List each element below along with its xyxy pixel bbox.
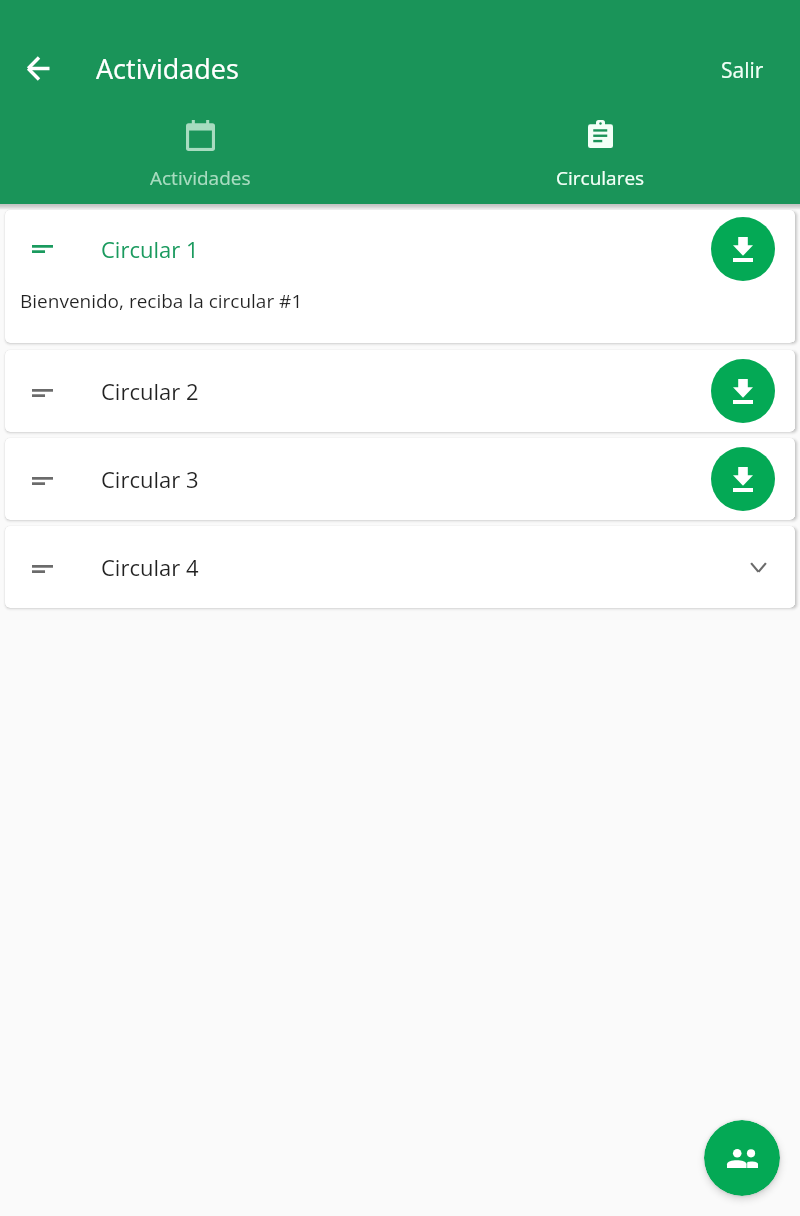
staticText: Bienvenido, reciba la circular #1 xyxy=(20,288,303,314)
button[interactable]: Contactos xyxy=(704,1120,780,1196)
staticText: Circular 3 xyxy=(101,464,711,494)
button[interactable]: Descargar xyxy=(711,217,775,281)
button[interactable]: Circular 4 xyxy=(5,526,795,608)
staticText: Circular 2 xyxy=(101,376,711,406)
button[interactable]: Circular 3 xyxy=(5,438,795,520)
button[interactable]: Actividades xyxy=(0,112,400,204)
button[interactable]: Descargar xyxy=(711,359,775,423)
button[interactable]: Expandir xyxy=(736,545,780,589)
button[interactable]: Circular 2 xyxy=(5,350,795,432)
button[interactable]: Descargar xyxy=(711,447,775,511)
staticText: Circulares xyxy=(556,165,645,191)
staticText: Actividades xyxy=(150,165,251,191)
button[interactable]: Circulares xyxy=(400,112,800,204)
staticText: Actividades xyxy=(96,50,239,87)
staticText: Circular 4 xyxy=(101,552,736,582)
staticText: Salir xyxy=(721,56,764,85)
button[interactable]: Circular 1 xyxy=(5,210,795,343)
button[interactable]: Atrás xyxy=(13,43,63,93)
button[interactable]: Salir xyxy=(713,48,772,93)
staticText: Circular 1 xyxy=(101,234,711,264)
